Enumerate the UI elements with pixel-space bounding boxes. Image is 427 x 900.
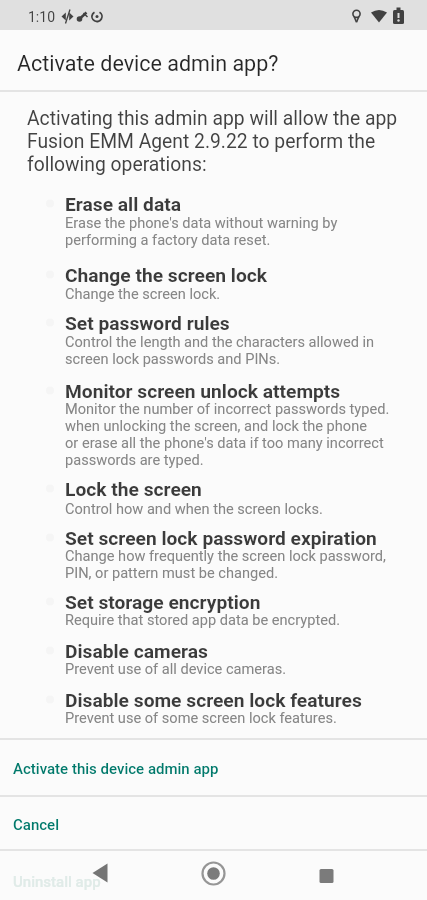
staticText: Fusion EMM Agent 2.9.22 to perform the	[27, 130, 376, 153]
staticText: Set storage encryption	[65, 591, 261, 614]
staticText: PIN, or pattern must be changed.	[65, 564, 279, 581]
staticText: Disable some screen lock features	[65, 689, 362, 712]
staticText: Cancel	[13, 816, 60, 834]
staticText: 1:10	[28, 9, 55, 25]
staticText: Prevent use of some screen lock features…	[65, 709, 337, 726]
staticText: Monitor the number of incorrect password…	[65, 400, 390, 417]
staticText: following operations:	[27, 153, 207, 176]
button[interactable]: Uninstall app	[0, 851, 427, 900]
button[interactable]	[76, 849, 124, 897]
button[interactable]: Activate this device admin app	[0, 740, 427, 795]
staticText: Erase the phone's data without warning b…	[65, 214, 338, 231]
staticText: Activating this admin app will allow the…	[27, 107, 398, 130]
staticText: or erase all the phone's data if too man…	[65, 434, 384, 451]
staticText: Require that stored app data be encrypte…	[65, 611, 341, 628]
staticText: Uninstall app	[13, 873, 101, 891]
staticText: Prevent use of all device cameras.	[65, 660, 287, 677]
staticText: Activate this device admin app	[13, 760, 219, 778]
staticText: screen lock passwords and PINs.	[65, 350, 281, 367]
staticText: Monitor screen unlock attempts	[65, 380, 341, 403]
button[interactable]: Cancel	[0, 797, 427, 849]
staticText: Change the screen lock	[65, 264, 268, 287]
staticText: Disable cameras	[65, 640, 208, 663]
staticText: Change the screen lock.	[65, 285, 221, 302]
staticText: passwords are typed.	[65, 451, 204, 468]
staticText: when unlocking the screen, and lock the …	[65, 417, 367, 434]
button[interactable]	[189, 849, 237, 897]
staticText: Set password rules	[65, 312, 230, 335]
staticText: Change how frequently the screen lock pa…	[65, 547, 386, 564]
staticText: Lock the screen	[65, 478, 202, 501]
staticText: Activate device admin app?	[17, 51, 279, 76]
staticText: Control the length and the characters al…	[65, 333, 375, 350]
staticText: Erase all data	[65, 193, 181, 216]
button[interactable]	[302, 849, 350, 897]
staticText: Set screen lock password expiration	[65, 527, 377, 550]
staticText: Control how and when the screen locks.	[65, 500, 323, 517]
staticText: performing a factory data reset.	[65, 231, 271, 248]
